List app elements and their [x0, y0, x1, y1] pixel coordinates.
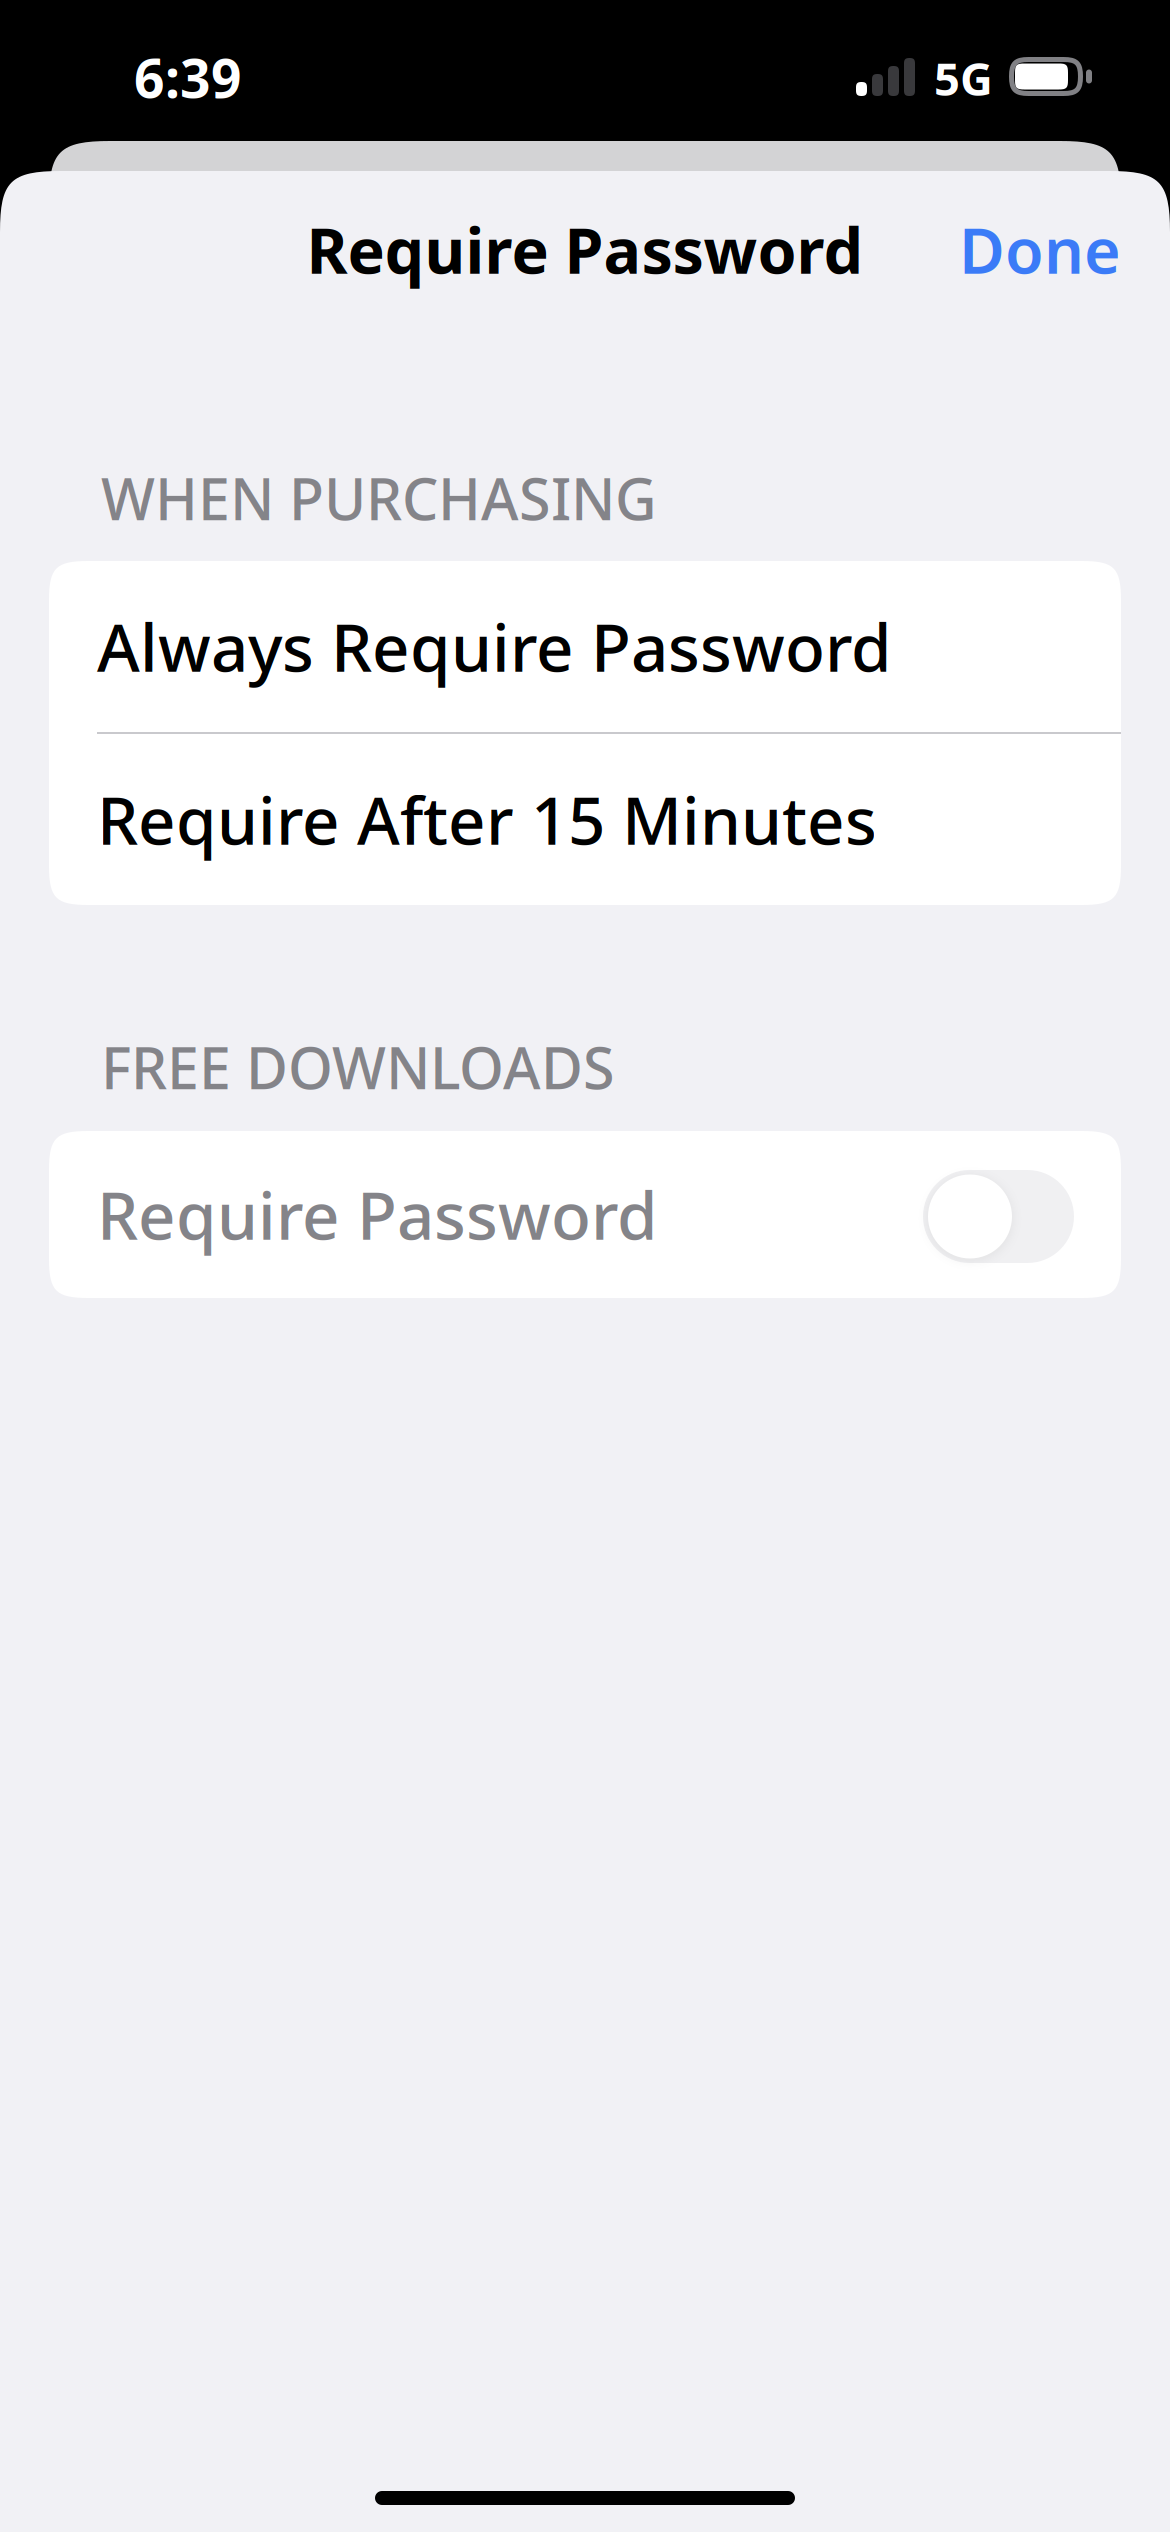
button[interactable]: Always Require Password — [49, 561, 1121, 732]
staticText: WHEN PURCHASING — [101, 460, 657, 536]
staticText: FREE DOWNLOADS — [101, 1029, 615, 1105]
staticText: Require Password — [306, 208, 863, 291]
button[interactable]: Done — [937, 190, 1143, 309]
staticText: Done — [959, 208, 1121, 291]
staticText: Require After 15 Minutes — [97, 776, 877, 863]
staticText: 5G — [934, 48, 993, 108]
staticText: Always Require Password — [97, 603, 892, 690]
staticText: 6:39 — [134, 42, 242, 113]
button[interactable]: Require After 15 Minutes — [49, 734, 1121, 905]
staticText: Require Password — [97, 1171, 658, 1258]
button[interactable]: Require Password — [49, 1131, 1121, 1298]
